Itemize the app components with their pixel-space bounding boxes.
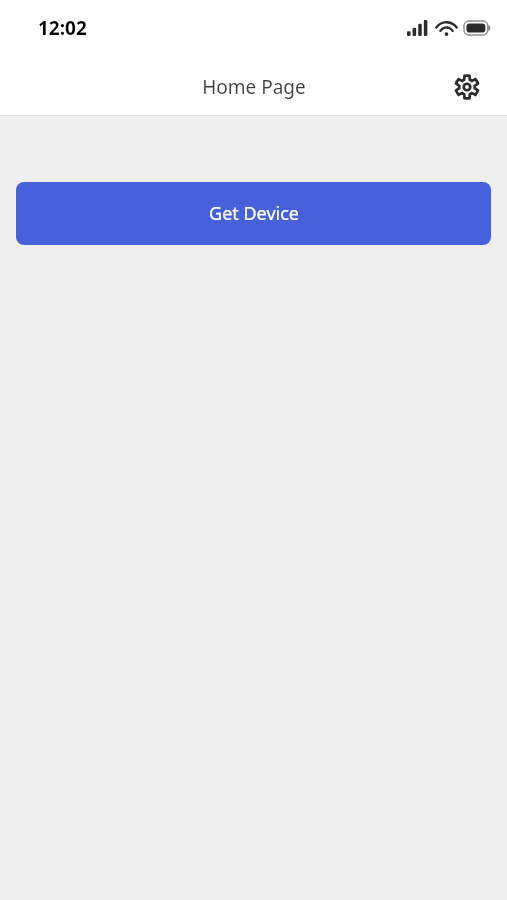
- staticText: Home Page: [202, 74, 306, 100]
- staticText: 12:02: [38, 15, 87, 41]
- button[interactable]: Get Device: [16, 182, 491, 245]
- staticText: Get Device: [209, 201, 299, 226]
- button[interactable]: Settings: [453, 73, 481, 101]
